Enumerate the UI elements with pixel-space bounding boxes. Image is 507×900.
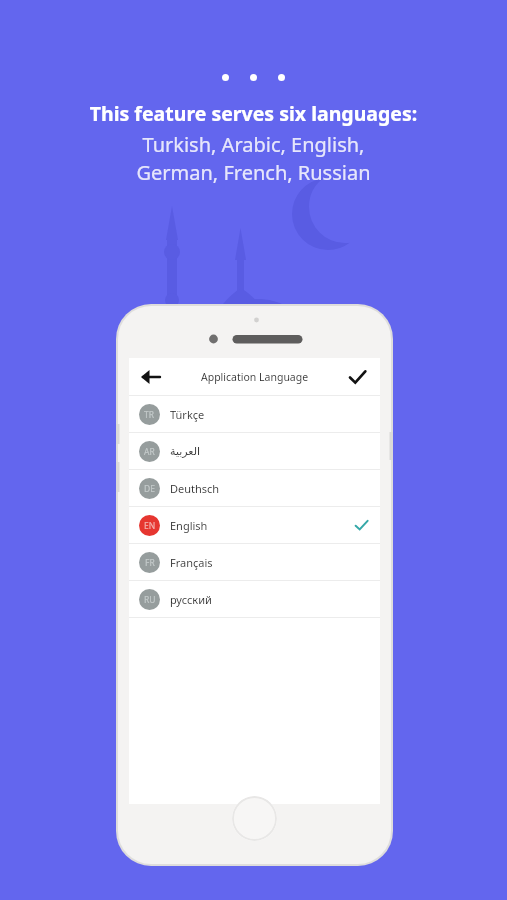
button[interactable]: Home	[232, 796, 277, 841]
button[interactable]: EN	[129, 507, 380, 543]
staticText: Turkish, Arabic, English, German, French…	[0, 131, 507, 186]
button[interactable]: TR	[129, 396, 380, 432]
button[interactable]: AR	[129, 433, 380, 469]
button[interactable]: RU	[129, 581, 380, 617]
button[interactable]: DE	[129, 470, 380, 506]
staticText: русский	[170, 592, 212, 607]
button[interactable]: Back	[135, 362, 165, 392]
button[interactable]: FR	[129, 544, 380, 580]
staticText: FR	[145, 557, 155, 569]
staticText: RU	[144, 594, 156, 606]
staticText: TR	[144, 409, 155, 421]
staticText: العربية	[170, 445, 201, 458]
staticText: Français	[170, 555, 213, 570]
staticText: English	[170, 518, 208, 533]
staticText: Türkçe	[170, 407, 205, 422]
staticText: This feature serves six languages:	[0, 100, 507, 127]
staticText: Deuthsch	[170, 481, 220, 496]
staticText: DE	[144, 483, 155, 495]
button[interactable]: Confirm	[342, 362, 372, 392]
staticText: EN	[144, 520, 156, 532]
staticText: AR	[144, 446, 155, 458]
staticText: Application Language	[201, 370, 309, 384]
